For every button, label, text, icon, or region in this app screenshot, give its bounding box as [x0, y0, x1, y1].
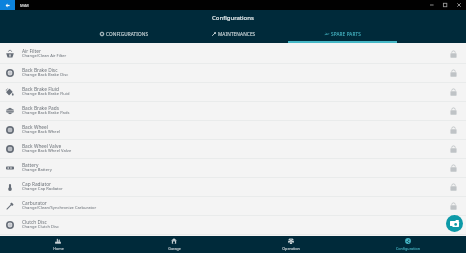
button[interactable]: Home — [0, 236, 116, 253]
button[interactable]: Operation — [232, 236, 349, 253]
staticText: Back Wheel Valve — [22, 143, 62, 150]
staticText: Change Cap Radiator — [22, 186, 63, 192]
staticText: MtM — [20, 3, 29, 8]
staticText: Change Back Wheel — [22, 129, 61, 135]
button[interactable]: Back Brake Pads — [0, 102, 466, 120]
staticText: Clutch Disc — [22, 219, 47, 226]
staticText: Change/Clean/Synchronize Carburator — [22, 205, 97, 211]
staticText: Home — [53, 246, 64, 251]
button[interactable]: Back Wheel — [0, 121, 466, 139]
staticText: Change Back Brake Disc — [22, 72, 69, 78]
staticText: Change/Clean Air Filter — [22, 53, 67, 59]
staticText: Change Back Brake Fluid — [22, 91, 70, 97]
button[interactable]: Back Brake Disc — [0, 64, 466, 82]
button[interactable]: Carburator — [0, 197, 466, 215]
button[interactable]: Configuration — [349, 236, 466, 253]
staticText: Back Wheel — [22, 124, 48, 131]
button[interactable]: MAINTENANCES — [179, 29, 288, 43]
staticText: MAINTENANCES — [218, 31, 256, 37]
staticText: Carburator — [22, 200, 47, 207]
button[interactable]: SPARE PARTS — [288, 29, 397, 43]
staticText: Change Back Brake Pads — [22, 110, 70, 116]
button[interactable]: Battery — [0, 159, 466, 177]
staticText: Operation — [282, 246, 300, 251]
button[interactable]: Take photo — [446, 215, 463, 232]
staticText: Configurations — [212, 14, 254, 22]
staticText: CONFIGURATIONS — [106, 31, 149, 37]
staticText: Change Clutch Disc — [22, 224, 60, 230]
staticText: Configuration — [396, 246, 420, 251]
staticText: Back Brake Fluid — [22, 86, 60, 93]
button[interactable]: Back Brake Fluid — [0, 83, 466, 101]
staticText: Change Back Wheel Valve — [22, 148, 72, 154]
staticText: Back Brake Disc — [22, 67, 58, 74]
staticText: Air Filter — [22, 48, 41, 55]
staticText: Change Battery — [22, 167, 52, 173]
button[interactable]: Garage — [116, 236, 232, 253]
button[interactable]: Cap Radiator — [0, 178, 466, 196]
staticText: SPARE PARTS — [331, 31, 361, 37]
button[interactable]: CONFIGURATIONS — [70, 29, 179, 43]
staticText: Back Brake Pads — [22, 105, 59, 112]
button[interactable]: Clutch Disc — [0, 216, 466, 234]
staticText: Cap Radiator — [22, 181, 52, 188]
staticText: Garage — [168, 246, 181, 251]
button[interactable]: Air Filter — [0, 45, 466, 63]
button[interactable]: Back Wheel Valve — [0, 140, 466, 158]
button[interactable]: Back — [0, 0, 15, 10]
staticText: Battery — [22, 162, 39, 169]
